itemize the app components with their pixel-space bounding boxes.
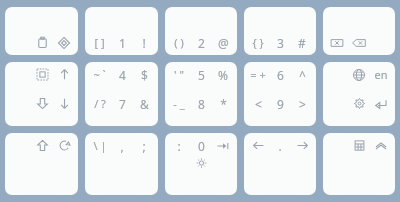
button[interactable]: Shift: [5, 133, 78, 195]
button[interactable]: Delete: [323, 7, 395, 55]
other: Emoji: [58, 37, 70, 49]
staticText: *: [220, 96, 227, 111]
staticText: 1: [119, 35, 126, 50]
button[interactable]: [ ]: [85, 7, 158, 55]
staticText: <: [255, 96, 262, 111]
button[interactable]: ' ": [165, 62, 237, 126]
staticText: 4: [119, 67, 126, 82]
staticText: / ?: [94, 96, 106, 111]
button[interactable]: Change language: [323, 62, 395, 126]
staticText: %: [218, 67, 228, 82]
other: Backspace: [352, 36, 366, 50]
staticText: \ |: [93, 138, 107, 153]
staticText: &: [140, 96, 149, 111]
other: Brightness: [196, 157, 207, 168]
other: Calculator: [354, 140, 365, 151]
button[interactable]: = +: [244, 62, 316, 126]
staticText: .: [278, 138, 282, 153]
staticText: 0: [198, 138, 205, 153]
button[interactable]: { }: [244, 7, 316, 55]
staticText: 6: [277, 67, 284, 82]
other: Right: [297, 140, 308, 151]
staticText: = +: [250, 67, 266, 82]
button[interactable]: :: [165, 133, 237, 195]
staticText: 2: [198, 35, 205, 50]
staticText: :: [177, 138, 181, 153]
button[interactable]: Left: [244, 133, 316, 195]
button[interactable]: \ |: [85, 133, 158, 195]
other: Hide keyboard: [375, 140, 387, 152]
other: Select all: [37, 69, 48, 80]
staticText: !: [142, 35, 146, 50]
staticText: { }: [252, 35, 264, 50]
other: Tab: [217, 140, 229, 152]
button[interactable]: Clipboard: [5, 7, 78, 55]
staticText: >: [299, 96, 306, 111]
button[interactable]: ~ `: [85, 62, 158, 126]
staticText: 9: [277, 96, 284, 111]
staticText: 7: [119, 96, 126, 111]
staticText: $: [141, 67, 148, 82]
other: Down: [59, 98, 70, 109]
staticText: #: [298, 35, 306, 50]
other: Delete: [330, 36, 344, 50]
other: Settings: [354, 98, 365, 109]
staticText: 8: [198, 96, 205, 111]
button[interactable]: Select all: [5, 62, 78, 126]
other: Up: [59, 69, 70, 80]
button[interactable]: Calculator: [323, 133, 395, 195]
staticText: ;: [142, 138, 146, 153]
other: Change language: [353, 69, 365, 81]
other: Enter: [375, 98, 387, 110]
other: Clipboard: [37, 37, 48, 48]
staticText: [ ]: [94, 35, 105, 50]
staticText: ,: [120, 138, 124, 153]
staticText: ^: [299, 67, 306, 82]
staticText: 3: [277, 35, 284, 50]
other: Shift: [37, 140, 48, 151]
staticText: @: [218, 35, 229, 50]
staticText: 5: [198, 67, 205, 82]
other: Left: [253, 140, 264, 151]
staticText: ( ): [174, 35, 184, 50]
other: Refresh: [59, 140, 70, 151]
staticText: ~ `: [93, 67, 106, 82]
staticText: en: [374, 67, 388, 82]
button[interactable]: ( ): [165, 7, 237, 55]
other: Page down: [37, 98, 48, 109]
staticText: - _: [173, 96, 185, 111]
staticText: ' ": [174, 67, 184, 82]
